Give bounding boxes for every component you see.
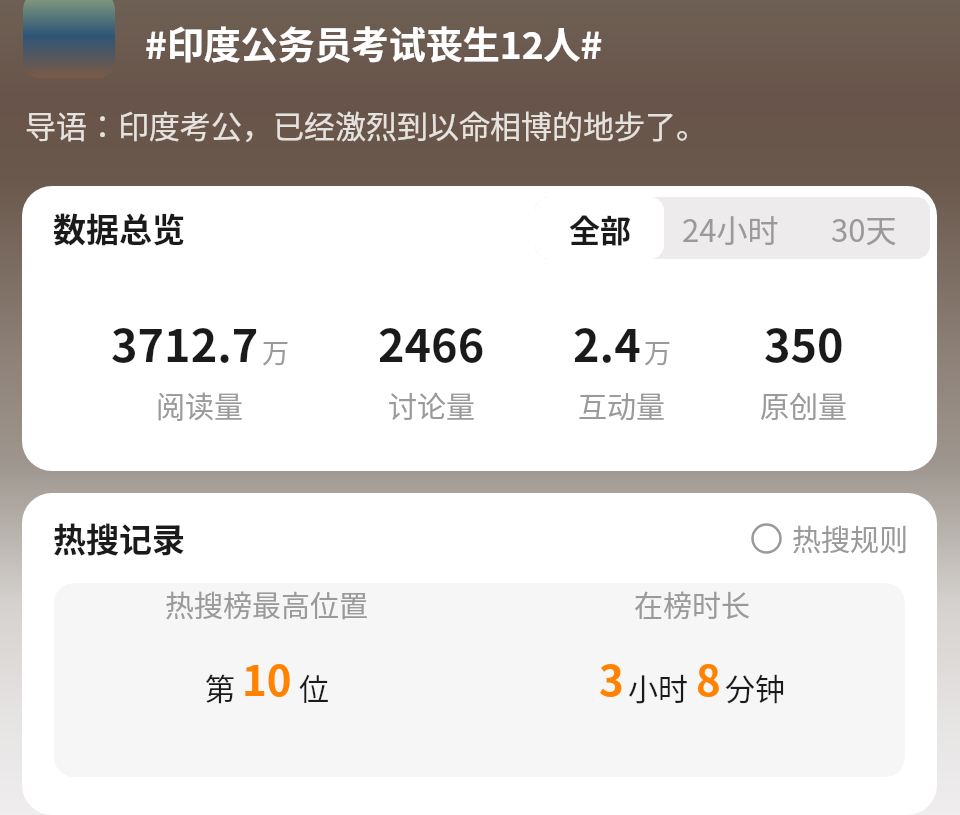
staticText: 讨论量	[388, 384, 476, 426]
staticText: 在榜时长	[634, 583, 751, 625]
staticText: 全部	[569, 206, 631, 251]
staticText: #印度公务员考试丧生12人#	[145, 16, 603, 70]
staticText: 350	[764, 310, 844, 375]
staticText: 3712.7	[111, 310, 259, 375]
button[interactable]: 24小时	[664, 197, 797, 259]
staticText: 位	[299, 665, 329, 708]
staticText: 万	[644, 332, 671, 371]
staticText: 24小时	[682, 206, 779, 251]
staticText: 小时	[628, 665, 688, 708]
button[interactable]: 30天	[797, 197, 930, 259]
staticText: 3	[599, 647, 624, 708]
button[interactable]: 热搜规则	[751, 517, 937, 559]
staticText: 分钟	[725, 665, 785, 708]
staticText: 热搜榜最高位置	[165, 583, 369, 625]
staticText: 30天	[831, 206, 897, 251]
staticText: 第	[205, 665, 235, 708]
staticText: 2466	[378, 310, 485, 375]
staticText: 10	[242, 647, 292, 708]
staticText: 数据总览	[53, 204, 185, 252]
staticText: 热搜规则	[792, 517, 909, 559]
staticText: 热搜记录	[53, 514, 185, 562]
staticText: 导语：印度考公，已经激烈到以命相博的地步了。	[25, 102, 707, 147]
staticText: 8	[696, 647, 721, 708]
button[interactable]: 全部	[535, 197, 664, 259]
staticText: 原创量	[760, 384, 848, 426]
staticText: 互动量	[578, 384, 666, 426]
staticText: 2.4	[573, 310, 641, 375]
staticText: 阅读量	[156, 384, 244, 426]
staticText: 万	[262, 332, 289, 371]
